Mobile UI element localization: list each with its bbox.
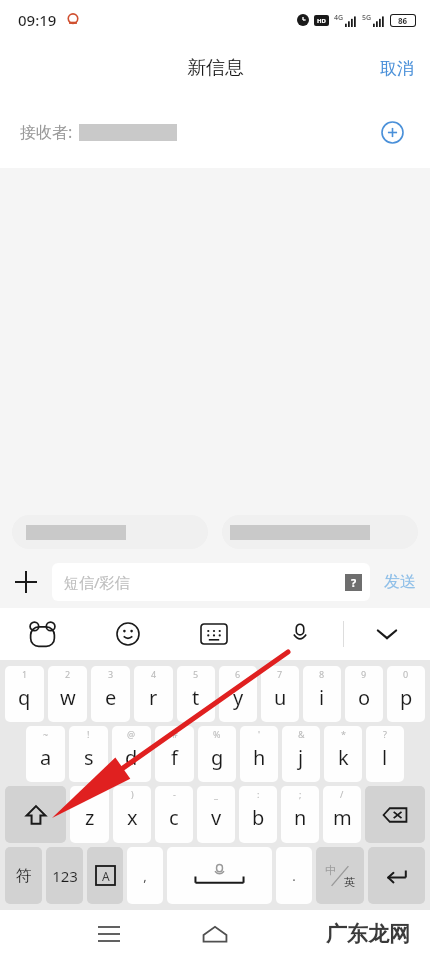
button[interactable]: 3 [91, 666, 130, 722]
button[interactable]: 9 [345, 666, 383, 722]
staticText: 1 [22, 668, 28, 680]
staticText: w [60, 684, 76, 711]
button[interactable]: 7 [261, 666, 299, 722]
staticText: 中 [325, 863, 336, 877]
staticText: 123 [52, 866, 78, 886]
button[interactable]: Shift [5, 786, 66, 843]
button[interactable] [12, 515, 208, 549]
staticText: ? [383, 728, 387, 740]
button[interactable]: ( [70, 786, 109, 843]
button[interactable]: Backspace [365, 786, 425, 843]
button[interactable]: Chinese English toggle [316, 847, 364, 904]
button[interactable]: 2 [48, 666, 87, 722]
button[interactable]: 发送 [370, 562, 430, 602]
button[interactable]: 1 [5, 666, 44, 722]
staticText: j [298, 744, 304, 771]
staticText: 5 [193, 668, 199, 680]
staticText: x [127, 804, 138, 831]
button[interactable]: & [282, 726, 320, 782]
staticText: 3 [108, 668, 114, 680]
button[interactable]: 0 [387, 666, 425, 722]
staticText: s [84, 744, 94, 771]
staticText: ( [88, 788, 91, 800]
staticText: 英 [344, 875, 355, 889]
staticText: g [211, 744, 224, 771]
staticText: A [102, 868, 110, 884]
button[interactable]: ! [69, 726, 108, 782]
staticText: 5G [362, 13, 372, 23]
button[interactable]: ~ [26, 726, 65, 782]
staticText: o [358, 684, 371, 711]
button[interactable]: 符 [5, 847, 42, 904]
button[interactable]: Add recipient [370, 110, 414, 154]
button[interactable] [222, 515, 418, 549]
staticText: 发送 [384, 572, 416, 592]
button[interactable]: 6 [219, 666, 257, 722]
staticText: ! [87, 728, 90, 740]
staticText: @ [127, 728, 136, 740]
staticText: 4 [151, 668, 157, 680]
staticText: . [292, 867, 296, 885]
button[interactable]: @ [112, 726, 151, 782]
button[interactable]: Add attachment [0, 556, 52, 608]
button[interactable]: Caps [87, 847, 123, 904]
button[interactable]: ) [113, 786, 151, 843]
button[interactable]: Voice input [257, 608, 343, 660]
staticText: 6 [235, 668, 241, 680]
button[interactable]: - [155, 786, 193, 843]
button[interactable]: Home [191, 910, 239, 958]
staticText: l [382, 744, 388, 771]
button[interactable]: 短信/彩信 [52, 563, 370, 601]
staticText: _ [214, 788, 218, 800]
button[interactable]: Hide keyboard [344, 608, 430, 660]
button[interactable]: ' [240, 726, 278, 782]
staticText: ) [131, 788, 134, 800]
staticText: t [192, 684, 200, 711]
button[interactable]: / [323, 786, 361, 843]
button[interactable]: 5 [177, 666, 215, 722]
button[interactable]: Emoji [85, 608, 171, 660]
staticText: d [125, 744, 138, 771]
staticText: 广东龙网 [326, 921, 410, 947]
staticText: ? [351, 575, 357, 590]
button[interactable]: * [324, 726, 362, 782]
button[interactable]: ; [281, 786, 319, 843]
staticText: 接收者: [20, 121, 73, 143]
staticText: - [173, 788, 176, 800]
staticText: n [294, 804, 307, 831]
button[interactable]: % [198, 726, 236, 782]
staticText: p [400, 684, 413, 711]
button[interactable]: Keyboard layout [171, 608, 257, 660]
staticText: k [338, 744, 349, 771]
staticText: m [333, 804, 352, 831]
button[interactable]: Space [167, 847, 272, 904]
button[interactable]: # [155, 726, 194, 782]
staticText: : [257, 788, 260, 800]
button[interactable]: Enter [368, 847, 425, 904]
button[interactable]: Baidu input [0, 608, 85, 660]
staticText: 取消 [380, 58, 414, 79]
staticText: 09:19 [18, 10, 57, 30]
button[interactable]: 取消 [364, 48, 430, 89]
button[interactable]: Recents [85, 910, 133, 958]
button[interactable]: 4 [134, 666, 173, 722]
staticText: / [340, 788, 344, 800]
staticText: % [213, 728, 221, 740]
button[interactable]: : [239, 786, 277, 843]
button[interactable]: ? [366, 726, 404, 782]
staticText: a [40, 744, 52, 771]
staticText: r [149, 684, 158, 711]
staticText: 0 [403, 668, 409, 680]
staticText: ~ [43, 728, 49, 740]
button[interactable]: 123 [46, 847, 83, 904]
button[interactable]: . [276, 847, 312, 904]
staticText: & [298, 728, 305, 740]
staticText: z [85, 804, 95, 831]
staticText: , [143, 867, 147, 885]
staticText: HD [317, 17, 326, 25]
button[interactable]: _ [197, 786, 235, 843]
button[interactable]: , [127, 847, 163, 904]
staticText: c [169, 804, 179, 831]
button[interactable]: 8 [303, 666, 341, 722]
staticText: v [211, 804, 222, 831]
